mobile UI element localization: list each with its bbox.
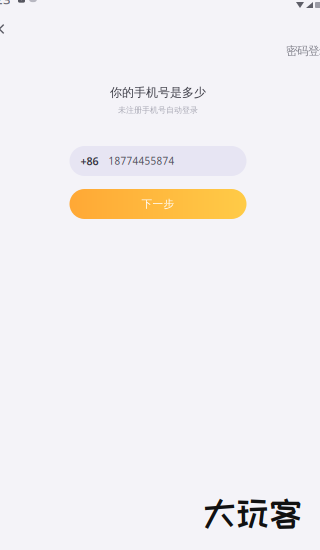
staticText: 下一步 — [141, 197, 174, 210]
staticText: 9:23 — [0, 0, 11, 8]
button[interactable]: 密码登录 — [286, 43, 320, 59]
staticText: 你的手机号是多少 — [110, 85, 206, 100]
button[interactable]: 返回 — [0, 22, 14, 36]
button[interactable]: 下一步 — [69, 189, 246, 219]
staticText: 大玩客 — [203, 495, 302, 531]
staticText: 密码登录 — [286, 44, 320, 58]
staticText: 18774455874 — [108, 154, 174, 168]
staticText: +86 — [80, 154, 98, 168]
staticText: 未注册手机号自动登录 — [118, 105, 198, 115]
